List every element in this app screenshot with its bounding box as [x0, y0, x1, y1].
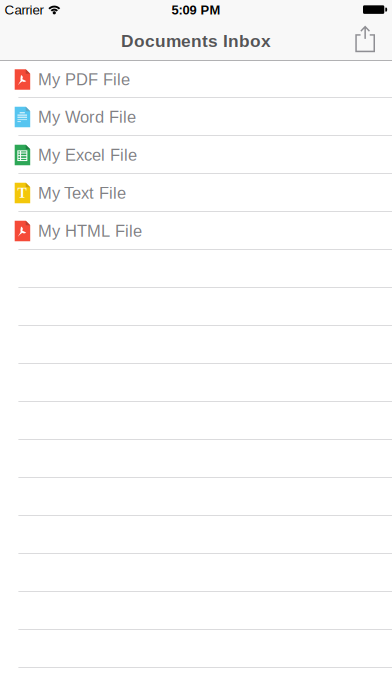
staticText: My Word File — [38, 108, 136, 126]
staticText: My Excel File — [38, 146, 137, 164]
staticText: My HTML File — [38, 222, 142, 240]
staticText: Documents Inbox — [121, 31, 271, 51]
button[interactable]: T — [0, 174, 392, 212]
staticText: 5:09 PM — [171, 3, 220, 17]
staticText: T — [18, 185, 27, 201]
button[interactable]: Share — [347, 20, 392, 61]
button[interactable]: My HTML File — [0, 212, 392, 250]
staticText: My Text File — [38, 184, 126, 202]
button[interactable]: My Excel File — [0, 136, 392, 174]
staticText: Carrier — [4, 3, 43, 17]
staticText: My PDF File — [38, 70, 130, 89]
button[interactable]: My Word File — [0, 98, 392, 136]
button[interactable]: My PDF File — [0, 61, 392, 98]
